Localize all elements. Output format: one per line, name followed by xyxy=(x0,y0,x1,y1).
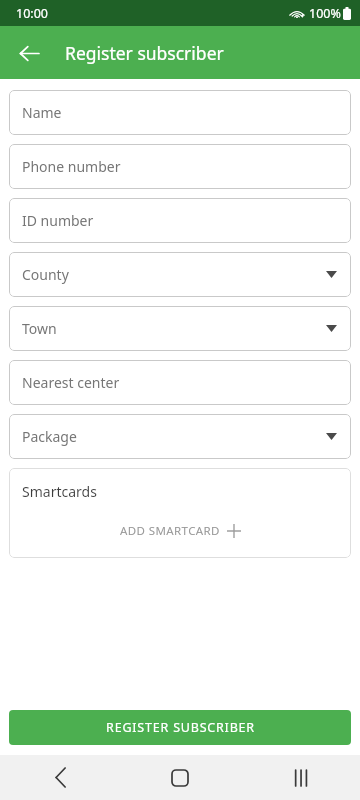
button[interactable]: ID number xyxy=(9,198,351,243)
button[interactable]: ADD SMARTCARD xyxy=(9,514,351,548)
button[interactable]: Phone number xyxy=(9,144,351,189)
staticText: 10:00 xyxy=(16,5,48,22)
staticText: Phone number xyxy=(22,157,121,176)
button[interactable]: Recent apps xyxy=(240,755,360,800)
staticText: Town xyxy=(22,319,57,338)
staticText: ID number xyxy=(22,211,94,230)
button[interactable]: Name xyxy=(9,90,351,135)
staticText: REGISTER SUBSCRIBER xyxy=(106,719,255,736)
staticText: County xyxy=(22,265,69,284)
button[interactable]: County xyxy=(9,252,351,297)
staticText: Package xyxy=(22,427,77,446)
staticText: Name xyxy=(22,103,62,122)
staticText: Register subscriber xyxy=(65,41,224,65)
button[interactable]: Town xyxy=(9,306,351,351)
button[interactable]: Nearest center xyxy=(9,360,351,405)
button[interactable]: Back xyxy=(0,755,120,800)
staticText: 100% xyxy=(309,5,341,22)
staticText: Smartcards xyxy=(22,482,97,501)
button[interactable]: Back xyxy=(9,33,49,73)
button[interactable]: REGISTER SUBSCRIBER xyxy=(9,710,351,745)
staticText: ADD SMARTCARD xyxy=(120,523,220,539)
button[interactable]: Package xyxy=(9,414,351,459)
button[interactable]: Home xyxy=(120,755,240,800)
staticText: Nearest center xyxy=(22,373,120,392)
